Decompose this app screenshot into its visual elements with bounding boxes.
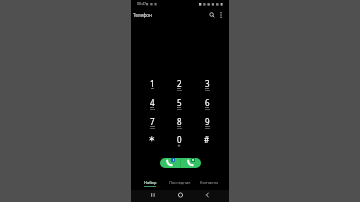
button[interactable] [218, 11, 224, 19]
button[interactable]: 2 [166, 76, 192, 90]
staticText: 2 [177, 78, 182, 89]
button[interactable] [208, 11, 216, 19]
button[interactable] [147, 190, 158, 200]
staticText: 00:47 [137, 1, 146, 6]
staticText: Контакты [200, 180, 219, 185]
staticText: 5 [177, 97, 182, 108]
button[interactable]: 4 [139, 95, 165, 109]
button[interactable]: 0 [166, 132, 192, 146]
button[interactable]: 8 [166, 114, 192, 128]
button[interactable]: # [194, 132, 220, 146]
staticText: 8 [177, 116, 182, 127]
button[interactable]: 5 [166, 95, 192, 109]
staticText: Последние [169, 180, 191, 185]
staticText: Набор [144, 180, 157, 185]
button[interactable] [160, 158, 181, 168]
staticText: 3 [205, 78, 210, 89]
button[interactable]: 7 [139, 114, 165, 128]
button[interactable]: 6 [194, 95, 220, 109]
staticText: 1 [150, 78, 155, 89]
button[interactable] [139, 132, 165, 146]
button[interactable] [175, 190, 186, 200]
button[interactable]: 3 [194, 76, 220, 90]
button[interactable] [181, 158, 201, 168]
staticText: 6 [205, 97, 210, 108]
button[interactable]: 9 [194, 114, 220, 128]
button[interactable]: Контакты [198, 179, 221, 186]
button[interactable]: 1 [139, 76, 165, 90]
staticText: 9 [205, 116, 210, 127]
staticText: 0 [177, 134, 182, 145]
button[interactable]: Набор [142, 179, 158, 186]
button[interactable] [202, 190, 213, 200]
staticText: 7 [150, 116, 155, 127]
staticText: 4 [150, 97, 155, 108]
staticText: # [204, 134, 210, 145]
button[interactable]: Последние [167, 179, 192, 186]
staticText: Телефон [133, 12, 152, 19]
